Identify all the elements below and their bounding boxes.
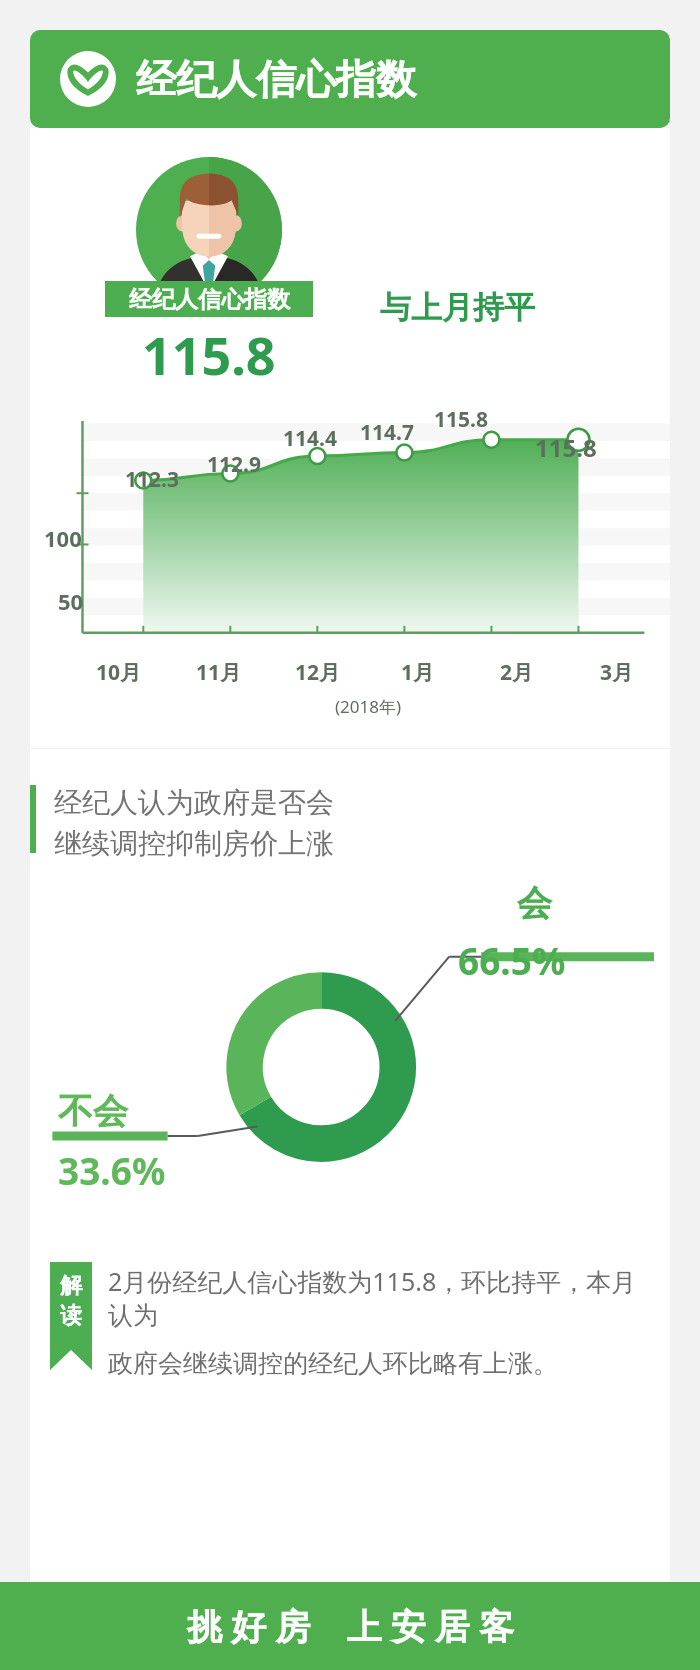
staticText: (2018年) bbox=[335, 695, 402, 718]
staticText: 经纪人认为政府是否会 bbox=[54, 785, 334, 820]
staticText: 11月 bbox=[196, 658, 242, 687]
staticText: 112.9 bbox=[207, 450, 261, 479]
staticText: 115.8 bbox=[434, 405, 488, 434]
staticText: 100 bbox=[44, 523, 82, 553]
staticText: 50 bbox=[58, 586, 84, 616]
button[interactable]: Anjuke logo bbox=[30, 30, 670, 128]
staticText: 政府会继续调控的经纪人环比略有上涨。 bbox=[108, 1348, 558, 1379]
other: Anjuke logo bbox=[60, 51, 116, 107]
staticText: 2月 bbox=[500, 658, 534, 687]
staticText: 会 bbox=[517, 881, 552, 925]
staticText: 2月份经纪人信心指数为115.8，环比持平，本月认为 bbox=[108, 1264, 660, 1332]
staticText: 解 bbox=[60, 1272, 82, 1300]
staticText: 挑 好 房 上 安 居 客 bbox=[187, 1602, 514, 1650]
staticText: 与上月持平 bbox=[380, 288, 535, 327]
staticText: 66.5% bbox=[458, 935, 566, 985]
staticText: 经纪人信心指数 bbox=[136, 54, 416, 104]
staticText: 经纪人信心指数 bbox=[129, 285, 290, 314]
staticText: 读 bbox=[60, 1302, 82, 1330]
staticText: 3月 bbox=[600, 658, 634, 687]
button[interactable]: 挑 好 房 上 安 居 客 bbox=[0, 1582, 700, 1670]
staticText: 115.8 bbox=[142, 319, 276, 390]
staticText: 112.3 bbox=[125, 465, 179, 494]
staticText: 114.7 bbox=[360, 418, 414, 447]
staticText: 12月 bbox=[295, 658, 341, 687]
staticText: 继续调控抑制房价上涨 bbox=[54, 826, 334, 861]
staticText: 不会 bbox=[58, 1089, 128, 1133]
staticText: 1月 bbox=[401, 658, 435, 687]
staticText: 10月 bbox=[96, 658, 142, 687]
staticText: 115.8 bbox=[535, 431, 597, 464]
staticText: 114.4 bbox=[283, 424, 337, 453]
staticText: 33.6% bbox=[58, 1145, 166, 1195]
